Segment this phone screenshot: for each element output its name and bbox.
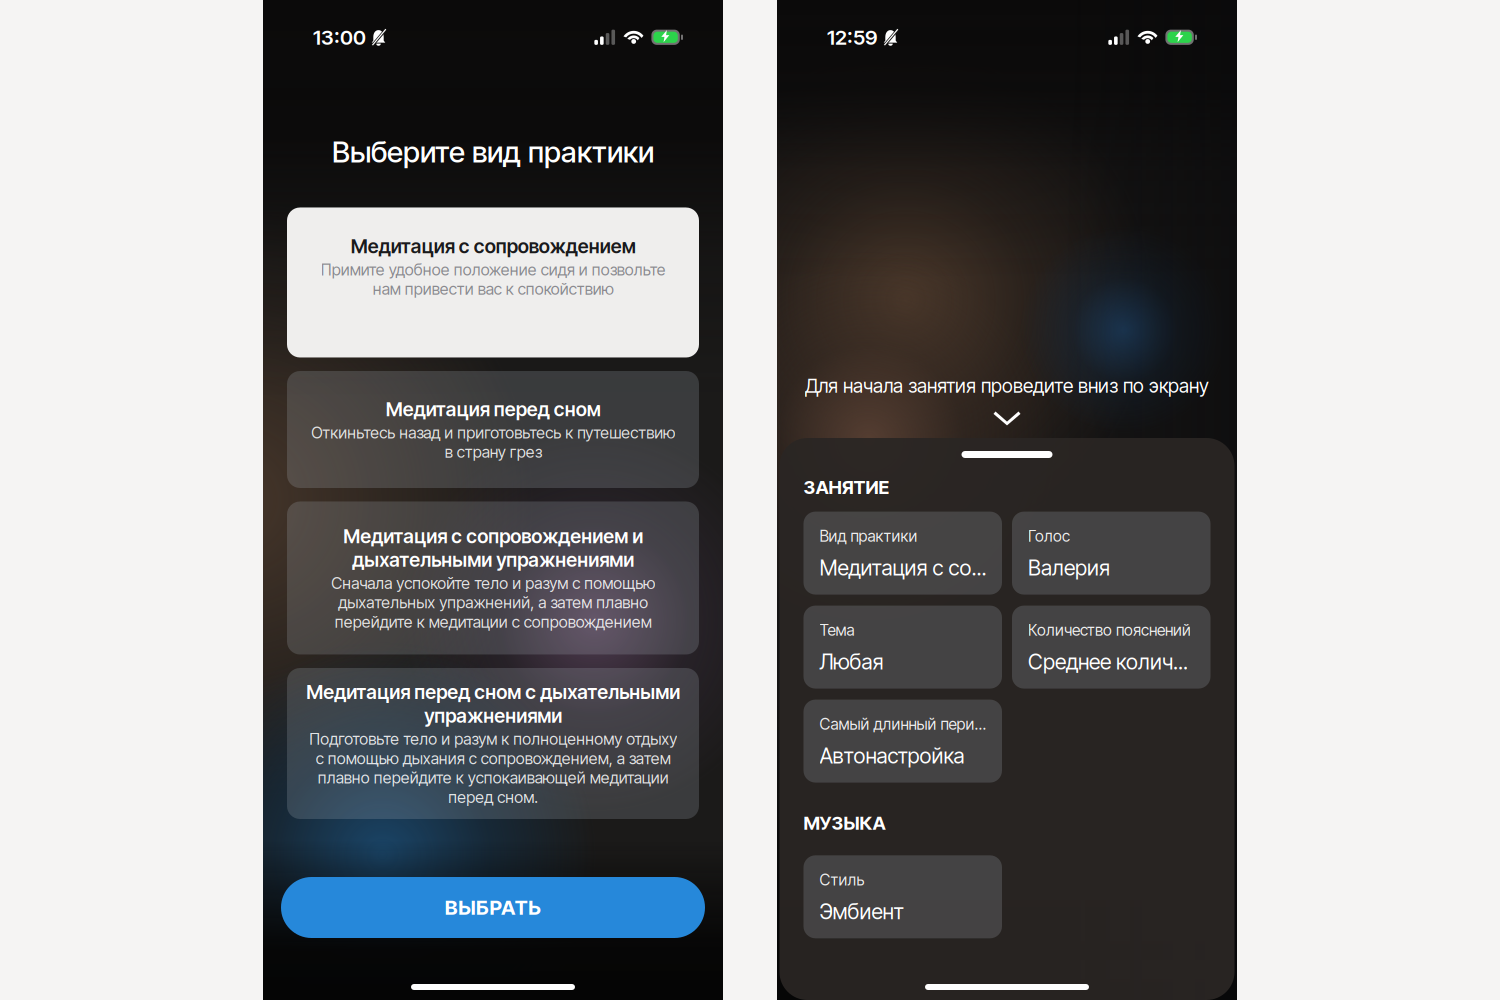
staticText: 12:59 xyxy=(827,25,878,50)
button[interactable]: Вид практики xyxy=(803,512,1002,595)
staticText: Голос xyxy=(1028,527,1070,546)
staticText: Вид практики xyxy=(819,527,917,546)
button[interactable]: Медитация с сопровождением и дыхательным… xyxy=(287,501,699,654)
button[interactable]: Голос xyxy=(1012,512,1210,595)
staticText: Валерия xyxy=(1028,555,1110,581)
staticText: ЗАНЯТИЕ xyxy=(803,476,889,499)
staticText: Медитация с сопровождением xyxy=(350,234,635,258)
staticText: Медитация перед сном с дыхательными упра… xyxy=(306,680,680,727)
button[interactable]: Медитация перед сном с дыхательными упра… xyxy=(287,668,699,819)
button[interactable]: Стиль xyxy=(803,855,1002,938)
staticText: Примите удобное положение сидя и позволь… xyxy=(320,260,665,299)
staticText: ВЫБРАТЬ xyxy=(445,895,541,920)
button[interactable]: Медитация с сопровождением xyxy=(287,207,699,357)
button[interactable]: ВЫБРАТЬ xyxy=(281,877,705,938)
button[interactable]: Тема xyxy=(803,606,1002,689)
staticText: Среднее колич... xyxy=(1028,649,1188,675)
staticText: Сначала успокойте тело и разум с помощью… xyxy=(331,573,655,632)
staticText: Тема xyxy=(819,621,854,640)
staticText: Медитация с сопровождением и дыхательным… xyxy=(343,524,643,571)
button[interactable]: Медитация перед сном xyxy=(287,371,699,488)
staticText: Эмбиент xyxy=(819,898,903,924)
staticText: Выберите вид практики xyxy=(332,134,654,169)
staticText: Медитация перед сном xyxy=(385,397,600,421)
staticText: Стиль xyxy=(819,870,864,889)
staticText: Любая xyxy=(819,649,883,675)
staticText: Автонастройка xyxy=(819,743,964,769)
staticText: Для начала занятия проведите вниз по экр… xyxy=(805,374,1209,397)
staticText: Медитация с со... xyxy=(819,555,986,581)
staticText: Самый длинный пери... xyxy=(819,715,986,734)
button[interactable]: Самый длинный пери... xyxy=(803,700,1002,783)
button[interactable]: Количество пояснений xyxy=(1012,606,1210,689)
staticText: МУЗЫКА xyxy=(803,812,885,834)
staticText: Откиньтесь назад и приготовьтесь к путеш… xyxy=(311,423,675,462)
staticText: Подготовьте тело и разум к полноценному … xyxy=(309,729,677,807)
staticText: Количество пояснений xyxy=(1028,621,1191,640)
staticText: 13:00 xyxy=(313,25,366,50)
